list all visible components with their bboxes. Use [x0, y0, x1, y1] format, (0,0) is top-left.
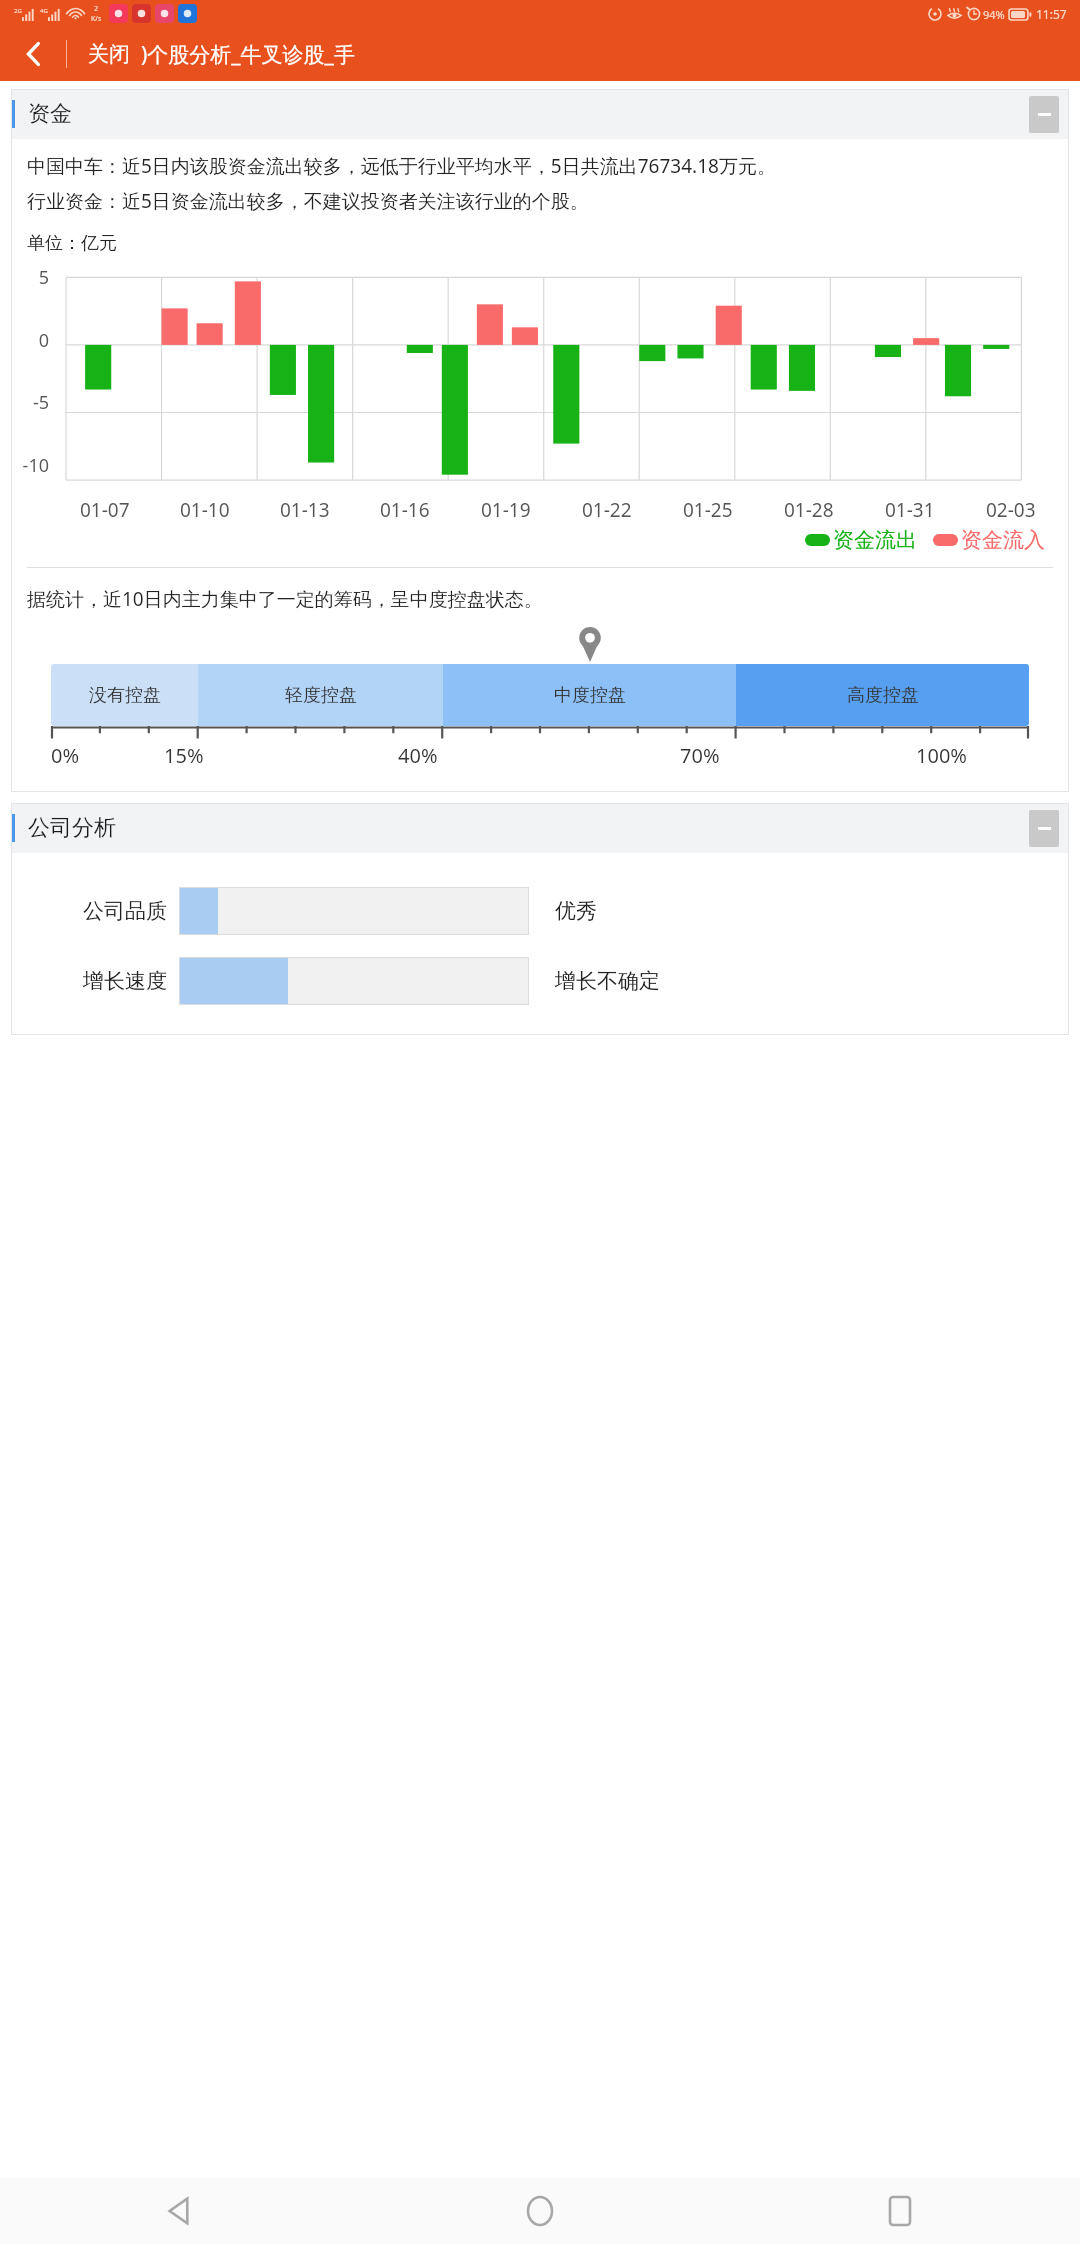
staticText: 公司分析 — [28, 814, 116, 842]
staticText: 资金 — [28, 100, 72, 128]
staticText: 关闭 — [88, 41, 130, 67]
staticText: 中国中车：近5日内该股资金流出较多，远低于行业平均水平，5日共流出76734.1… — [27, 153, 776, 179]
staticText: 优秀 — [555, 898, 597, 924]
button[interactable]: 没有控盘 — [51, 664, 198, 726]
staticText: 01-19 — [481, 497, 531, 523]
staticText: 高度控盘 — [847, 684, 919, 707]
staticText: 公司品质 — [83, 898, 167, 924]
staticText: 增长不确定 — [555, 968, 660, 994]
staticText: 01-25 — [683, 497, 733, 523]
staticText: 100% — [916, 742, 967, 769]
staticText: 01-13 — [280, 497, 330, 523]
staticText: 01-31 — [885, 497, 935, 523]
staticText: 0% — [51, 742, 80, 769]
staticText: 据统计，近10日内主力集中了一定的筹码，呈中度控盘状态。 — [27, 586, 543, 612]
staticText: 01-22 — [582, 497, 632, 523]
staticText: )个股分析_牛叉诊股_手 — [141, 40, 355, 69]
staticText: 资金流入 — [961, 527, 1045, 553]
staticText: 0 — [11, 328, 49, 353]
staticText: -5 — [11, 390, 49, 415]
staticText: 40% — [398, 742, 438, 769]
staticText: 2G — [14, 7, 22, 15]
button[interactable]: 轻度控盘 — [198, 664, 443, 726]
staticText: 没有控盘 — [89, 684, 161, 707]
staticText: 01-10 — [180, 497, 230, 523]
staticText: 01-16 — [380, 497, 430, 523]
button[interactable]: 资金 — [11, 89, 1069, 139]
button[interactable]: Back — [0, 2178, 360, 2244]
staticText: 01-07 — [80, 497, 130, 523]
button[interactable]: 关闭 — [88, 41, 130, 67]
staticText: 15% — [164, 742, 204, 769]
staticText: 2 — [94, 4, 99, 14]
staticText: 01-28 — [784, 497, 834, 523]
staticText: 增长速度 — [83, 968, 167, 994]
button[interactable]: 公司分析 — [11, 803, 1069, 853]
staticText: 轻度控盘 — [285, 684, 357, 707]
button[interactable]: Recents — [720, 2178, 1080, 2244]
staticText: 资金流出 — [833, 527, 917, 553]
staticText: 70% — [680, 742, 720, 769]
staticText: 11:57 — [1036, 6, 1067, 22]
button[interactable]: Collapse — [1029, 96, 1059, 133]
staticText: 02-03 — [986, 497, 1036, 523]
button[interactable]: 增长速度 — [27, 957, 1053, 1005]
button[interactable]: 公司品质 — [27, 887, 1053, 935]
staticText: 5 — [11, 265, 49, 290]
button[interactable]: 高度控盘 — [736, 664, 1029, 726]
staticText: 行业资金：近5日资金流出较多，不建议投资者关注该行业的个股。 — [27, 188, 589, 214]
staticText: 单位：亿元 — [27, 232, 117, 255]
button[interactable]: Collapse — [1029, 810, 1059, 847]
staticText: 94% — [983, 7, 1005, 22]
button[interactable]: Back — [0, 27, 66, 81]
button[interactable]: Home — [360, 2178, 720, 2244]
staticText: 4G — [40, 7, 48, 15]
staticText: -10 — [11, 453, 49, 478]
staticText: 中度控盘 — [554, 684, 626, 707]
staticText: K/s — [91, 14, 102, 24]
button[interactable]: 中度控盘 — [443, 664, 736, 726]
